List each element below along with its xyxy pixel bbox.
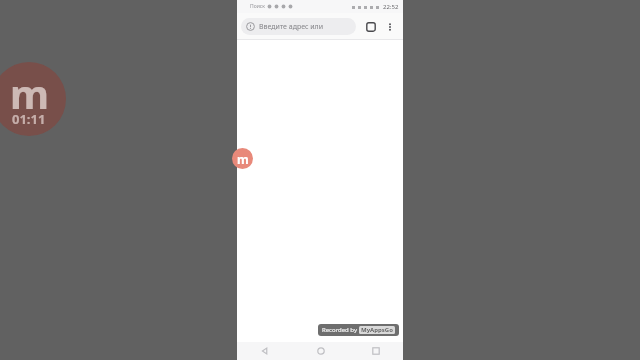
button[interactable]: More options xyxy=(381,18,399,36)
staticText: 01:11 xyxy=(12,110,46,128)
staticText: m xyxy=(237,151,249,167)
staticText: 22:52 xyxy=(383,3,399,11)
button[interactable]: Home xyxy=(293,342,348,360)
staticText: Recorded by xyxy=(322,326,359,334)
button[interactable]: Tabs xyxy=(361,17,381,37)
staticText: MyAppsGo xyxy=(361,326,393,334)
staticText: Введите адрес или поисковый xyxy=(259,22,350,32)
button[interactable]: Back xyxy=(237,342,293,360)
button[interactable]: Recent apps xyxy=(348,342,403,360)
staticText: m xyxy=(10,66,49,120)
button[interactable]: Введите адрес или поисковый xyxy=(241,18,356,35)
staticText: Поиск xyxy=(250,3,265,10)
